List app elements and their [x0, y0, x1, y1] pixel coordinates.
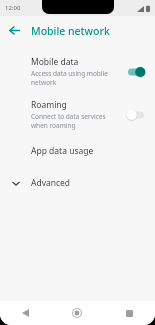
button[interactable]: Mobile data [0, 50, 155, 93]
button[interactable]: Back [4, 20, 25, 41]
button[interactable]: Advanced [0, 166, 155, 200]
staticText: App data usage [31, 145, 94, 157]
button[interactable]: On [125, 64, 147, 80]
button[interactable]: Back [0, 301, 51, 325]
staticText: Roaming [31, 99, 67, 111]
staticText: Access data using mobile network [31, 69, 119, 87]
staticText: Connect to data services when roaming [31, 112, 119, 130]
staticText: Mobile network [31, 24, 110, 38]
button[interactable]: Recent apps [103, 301, 155, 325]
button[interactable]: Home [51, 301, 103, 325]
staticText: Mobile data [31, 56, 79, 68]
staticText: Advanced [31, 177, 71, 189]
button[interactable]: App data usage [0, 136, 155, 166]
button[interactable]: Roaming [0, 93, 155, 136]
button[interactable]: Off [125, 107, 147, 123]
staticText: 12:00 [5, 4, 21, 12]
